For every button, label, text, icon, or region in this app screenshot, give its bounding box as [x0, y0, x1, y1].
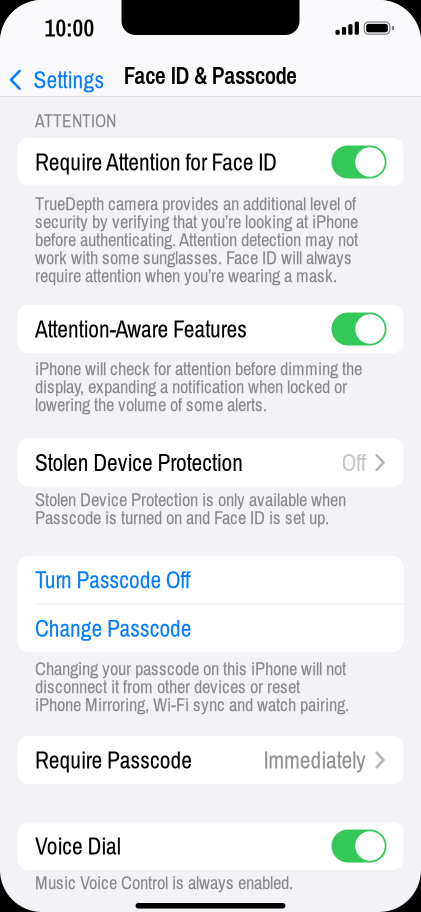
- staticText: lowering the volume of some alerts.: [35, 392, 267, 417]
- staticText: Require Passcode: [35, 745, 192, 775]
- staticText: Attention-Aware Features: [35, 314, 247, 344]
- staticText: ATTENTION: [35, 109, 116, 132]
- staticText: require attention when you’re wearing a …: [35, 263, 337, 288]
- staticText: Music Voice Control is always enabled.: [35, 870, 293, 895]
- staticText: Change Passcode: [35, 613, 192, 643]
- staticText: before authenticating. Attention detecti…: [35, 227, 358, 252]
- button[interactable]: Require Attention for Face ID: [331, 145, 386, 178]
- staticText: TrueDepth camera provides an additional …: [35, 191, 356, 216]
- staticText: iPhone will check for attention before d…: [35, 356, 362, 381]
- staticText: Require Attention for Face ID: [35, 147, 277, 177]
- staticText: 10:00: [44, 13, 94, 43]
- button[interactable]: Turn Passcode Off: [17, 556, 403, 603]
- staticText: Stolen Device Protection: [35, 447, 243, 478]
- staticText: security by verifying that you’re lookin…: [35, 209, 358, 234]
- staticText: Passcode is turned on and Face ID is set…: [35, 505, 329, 530]
- button[interactable]: Stolen Device Protection: [17, 438, 403, 486]
- staticText: Stolen Device Protection is only availab…: [35, 487, 346, 512]
- staticText: display, expanding a notification when l…: [35, 374, 347, 399]
- button[interactable]: Voice Dial: [331, 829, 386, 862]
- staticText: Settings: [34, 64, 105, 95]
- button[interactable]: Change Passcode: [17, 604, 403, 652]
- button[interactable]: Require Passcode: [17, 736, 403, 784]
- staticText: Off: [341, 447, 366, 478]
- staticText: iPhone Mirroring, Wi-Fi sync and watch p…: [35, 692, 349, 717]
- button[interactable]: Settings: [9, 64, 105, 95]
- staticText: Immediately: [263, 745, 366, 775]
- staticText: Turn Passcode Off: [35, 564, 190, 595]
- button[interactable]: Attention-Aware Features: [331, 312, 386, 345]
- staticText: disconnect it from other devices or rese…: [35, 674, 300, 699]
- staticText: Voice Dial: [35, 831, 121, 861]
- staticText: work with some sunglasses. Face ID will …: [35, 245, 352, 270]
- staticText: Face ID & Passcode: [124, 60, 297, 91]
- staticText: Changing your passcode on this iPhone wi…: [35, 656, 346, 681]
